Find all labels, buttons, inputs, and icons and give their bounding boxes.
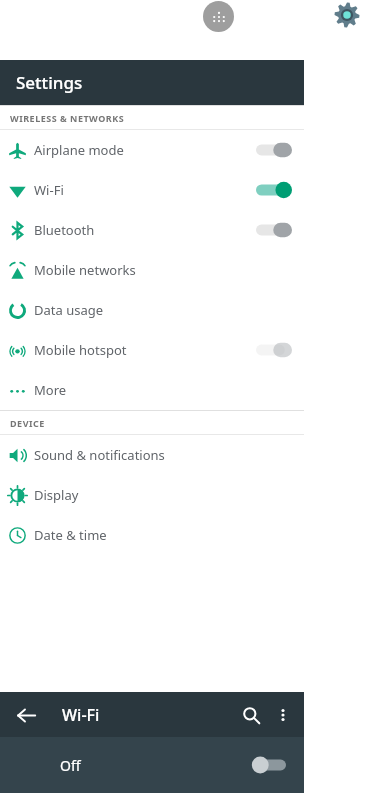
button[interactable]: Bluetooth [0,210,304,250]
button[interactable]: Wi-Fi [0,170,304,210]
button[interactable]: Date & time [0,515,304,555]
staticText: More [34,381,67,399]
staticText: Sound & notifications [34,446,165,464]
button[interactable]: Back [8,697,44,733]
button[interactable]: Airplane mode [0,130,304,170]
button[interactable]: Mobile hotspot [0,330,304,370]
staticText: WIRELESS & NETWORKS [10,112,125,124]
staticText: Airplane mode [34,141,124,159]
staticText: Wi-Fi [34,181,64,199]
staticText: Bluetooth [34,221,95,239]
button[interactable]: Sound & notifications [0,435,304,475]
button[interactable]: More options [268,700,298,730]
button[interactable]: Data usage [0,290,304,330]
staticText: DEVICE [10,417,45,429]
button[interactable]: More [0,370,304,410]
staticText: Display [34,486,79,504]
staticText: Date & time [34,526,107,544]
button[interactable]: Off [0,737,304,793]
button[interactable]: Mobile networks [0,250,304,290]
button[interactable]: Settings [333,1,361,29]
staticText: Data usage [34,301,104,319]
staticText: Mobile networks [34,261,136,279]
staticText: Off [60,756,81,775]
button[interactable]: Display [0,475,304,515]
staticText: Settings [16,71,83,94]
staticText: Wi-Fi [62,704,100,726]
staticText: Mobile hotspot [34,341,127,359]
button[interactable]: Search [234,698,268,732]
button[interactable]: Apps [203,1,234,32]
